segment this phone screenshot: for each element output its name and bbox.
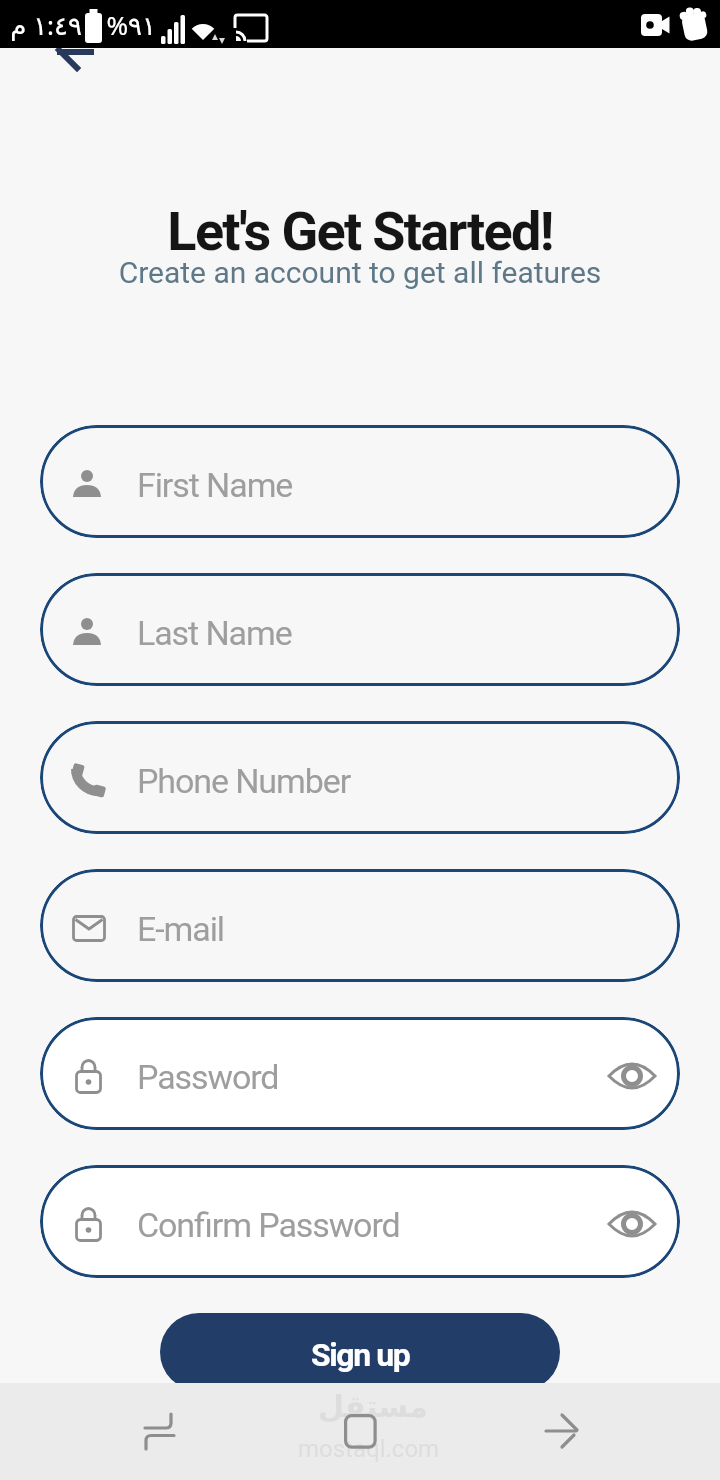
button[interactable]	[344, 1414, 376, 1448]
staticText: Create an account to get all features	[0, 255, 720, 290]
button[interactable]: Confirm Password	[40, 1165, 680, 1278]
button[interactable]: Sign up	[160, 1313, 560, 1391]
staticText: E-mail	[137, 909, 224, 949]
staticText: Confirm Password	[137, 1205, 400, 1245]
staticText: Last Name	[137, 613, 292, 653]
staticText: mostaql.com	[298, 1435, 440, 1463]
button[interactable]: Phone Number	[40, 721, 680, 834]
button[interactable]	[50, 38, 96, 72]
button[interactable]	[544, 1413, 580, 1449]
button[interactable]	[609, 1058, 655, 1094]
staticText: ١:٤٩ م	[10, 7, 82, 42]
button[interactable]: Password	[40, 1017, 680, 1130]
staticText: Let's Get Started!	[0, 200, 720, 263]
staticText: Phone Number	[137, 761, 351, 801]
staticText: Password	[137, 1057, 279, 1097]
button[interactable]: First Name	[40, 425, 680, 538]
button[interactable]	[609, 1206, 655, 1242]
staticText: Sign up	[311, 1336, 410, 1374]
button[interactable]: E-mail	[40, 869, 680, 982]
button[interactable]: Last Name	[40, 573, 680, 686]
staticText: ٩١%	[106, 7, 156, 42]
button[interactable]	[138, 1409, 178, 1453]
staticText: First Name	[137, 465, 293, 505]
staticText: مستقل	[318, 1389, 428, 1424]
